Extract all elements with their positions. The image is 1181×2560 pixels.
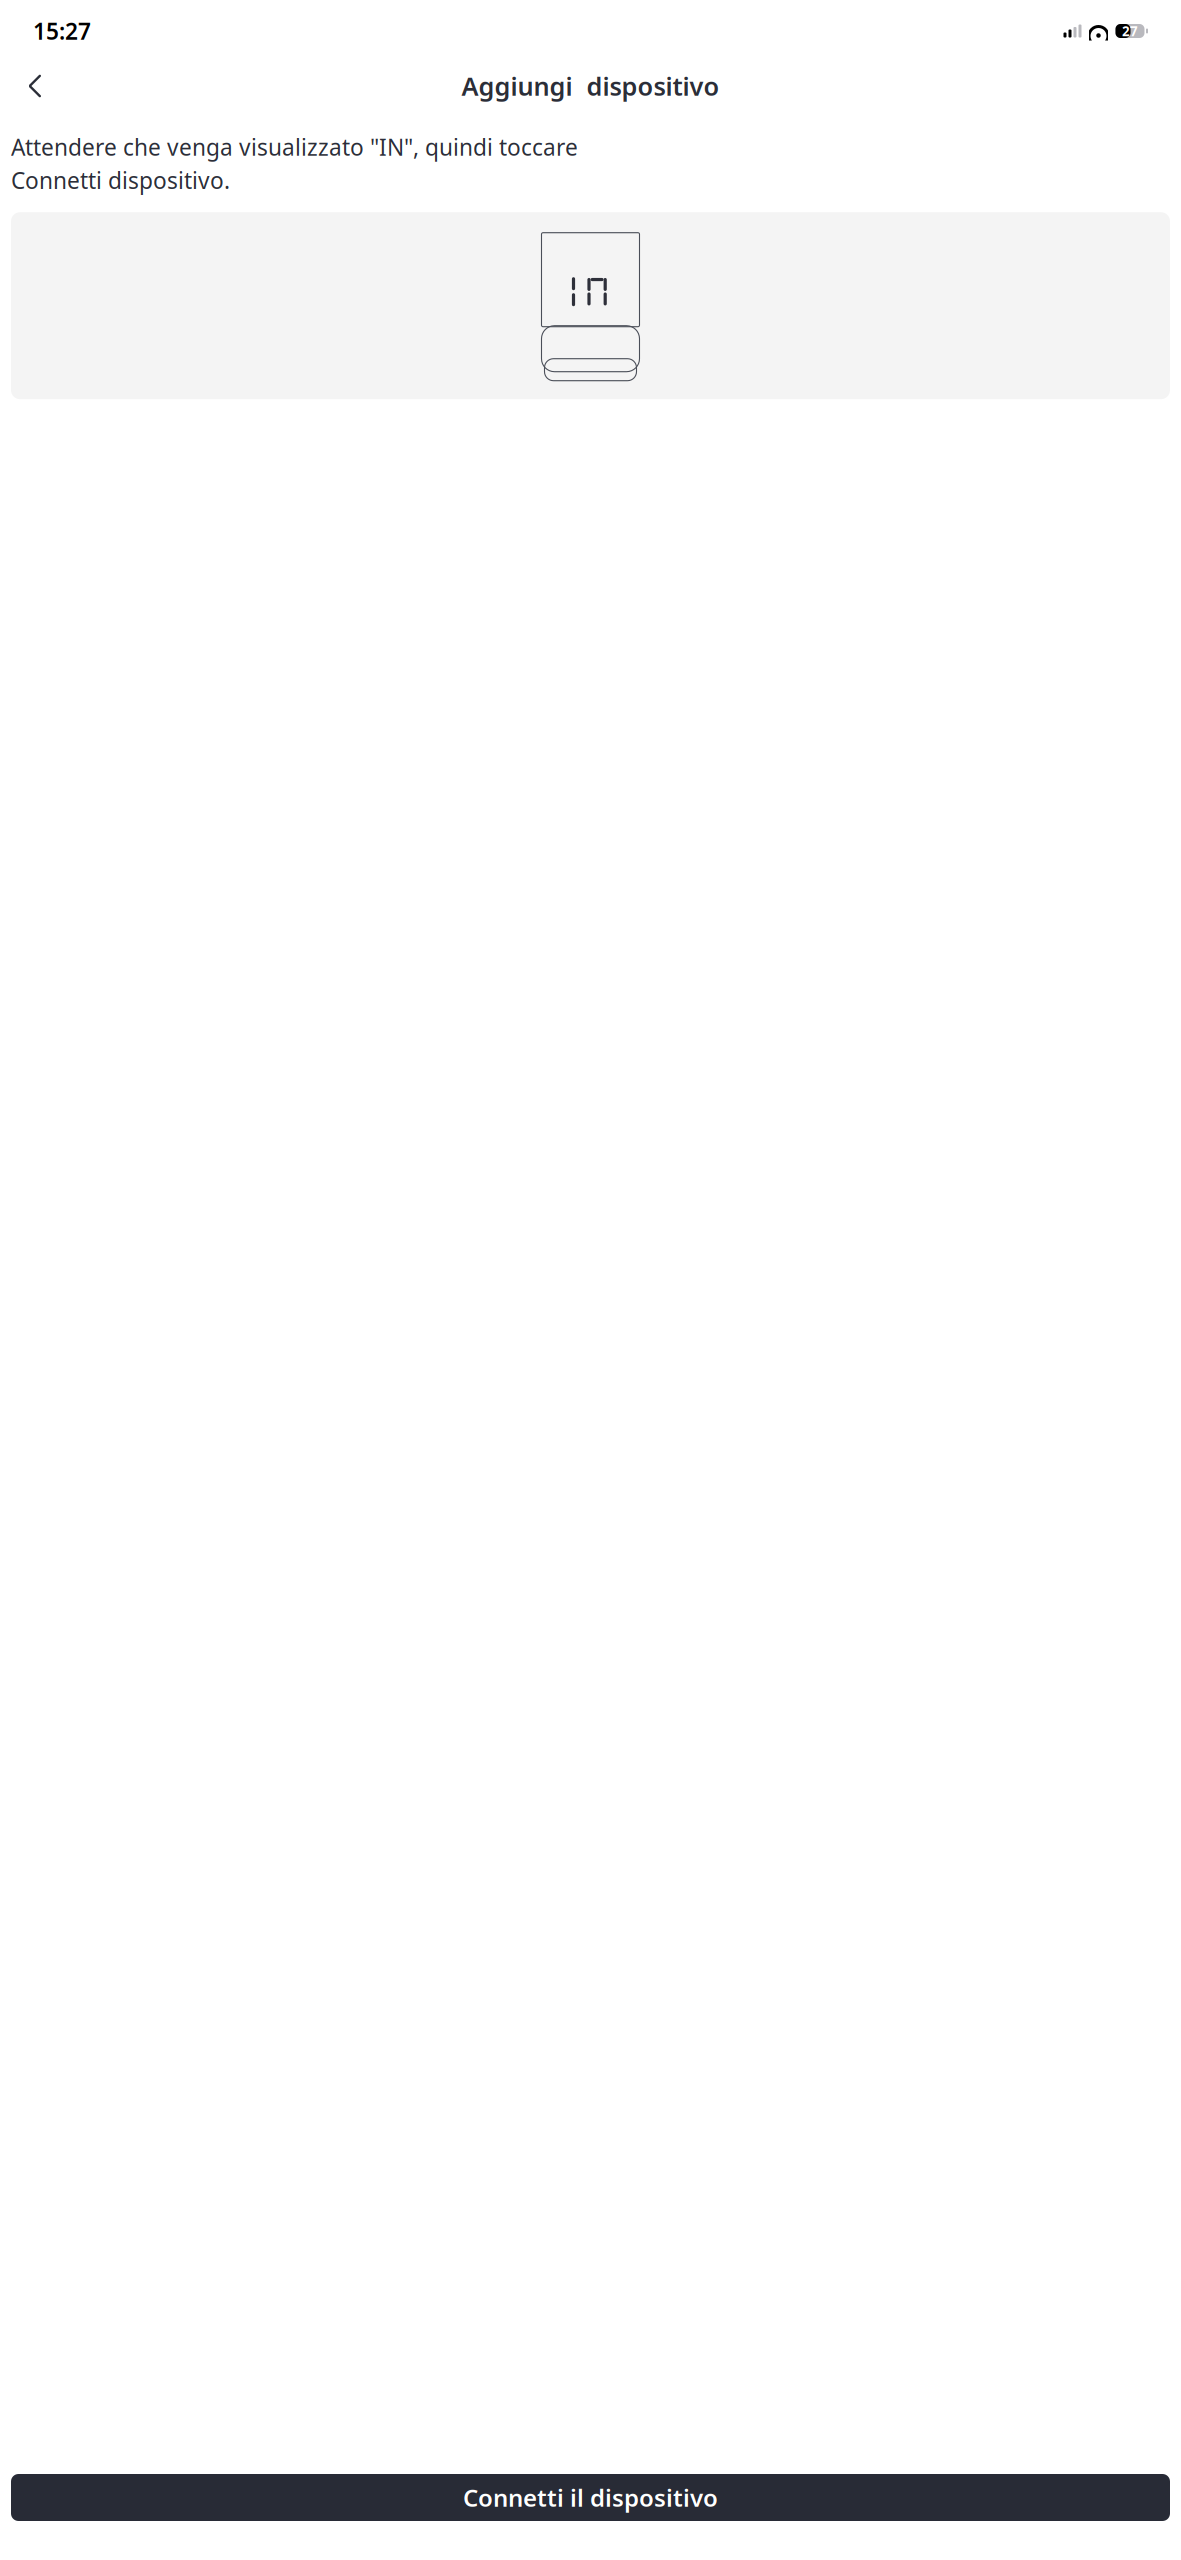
staticText: Connetti il dispositivo xyxy=(463,2482,718,2513)
staticText: Connetti dispositivo. xyxy=(11,165,230,195)
button[interactable]: Connetti il dispositivo xyxy=(11,2474,1170,2521)
staticText: Attendere che venga visualizzato "IN", q… xyxy=(11,132,578,162)
button[interactable]: Indietro xyxy=(13,64,57,108)
staticText: 27 xyxy=(1122,22,1138,40)
staticText: Aggiungi dispositivo xyxy=(461,69,719,103)
staticText: 15:27 xyxy=(33,16,91,46)
